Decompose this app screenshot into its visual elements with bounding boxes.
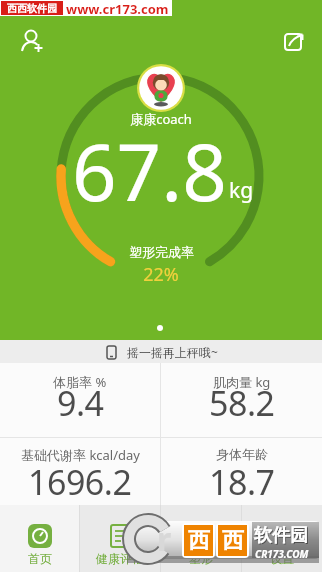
staticText: 西 xyxy=(188,527,210,555)
staticText: 67.8 xyxy=(72,118,227,224)
staticText: 身体年龄 xyxy=(216,446,268,462)
button[interactable]: 体脂率 % xyxy=(0,363,160,437)
button[interactable]: 身体年龄 xyxy=(161,438,322,505)
staticText: 肌肉量 kg xyxy=(213,373,271,391)
button[interactable] xyxy=(14,24,50,60)
button[interactable]: 首页 xyxy=(0,505,79,572)
staticText: 18.7 xyxy=(209,459,275,505)
staticText: 1696.2 xyxy=(28,459,132,505)
staticText: 塑形完成率 xyxy=(129,244,194,260)
button[interactable]: 健康评估 xyxy=(80,505,160,572)
staticText: 首页 xyxy=(28,551,52,566)
staticText: 康康coach xyxy=(130,110,192,128)
staticText: 软件园 xyxy=(255,525,309,548)
staticText: 基础代谢率 kcal/day xyxy=(21,446,140,464)
staticText: 塑形 xyxy=(189,551,213,566)
staticText: 体脂率 % xyxy=(53,373,107,391)
staticText: r xyxy=(157,517,172,561)
button[interactable]: 塑形 xyxy=(161,505,241,572)
staticText: www.cr173.com xyxy=(66,0,169,16)
staticText: 西西软件园 xyxy=(7,2,57,15)
button[interactable] xyxy=(278,24,312,58)
staticText: kg xyxy=(229,176,254,205)
staticText: 健康评估 xyxy=(96,551,144,566)
button[interactable]: 肌肉量 kg xyxy=(161,363,322,437)
staticText: 58.2 xyxy=(209,380,275,426)
staticText: 摇一摇再上秤哦~ xyxy=(127,344,218,360)
staticText: 22% xyxy=(143,262,179,287)
button[interactable]: 基础代谢率 kcal/day xyxy=(0,438,160,505)
staticText: 软件园 xyxy=(254,524,308,547)
button[interactable]: 摇一摇再上秤哦~ xyxy=(0,340,322,363)
staticText: 西 xyxy=(222,527,244,555)
button[interactable]: 设置 xyxy=(242,505,322,572)
staticText: CR173.COM xyxy=(255,547,309,561)
staticText: 设置 xyxy=(270,551,294,566)
staticText: 9.4 xyxy=(57,380,104,426)
